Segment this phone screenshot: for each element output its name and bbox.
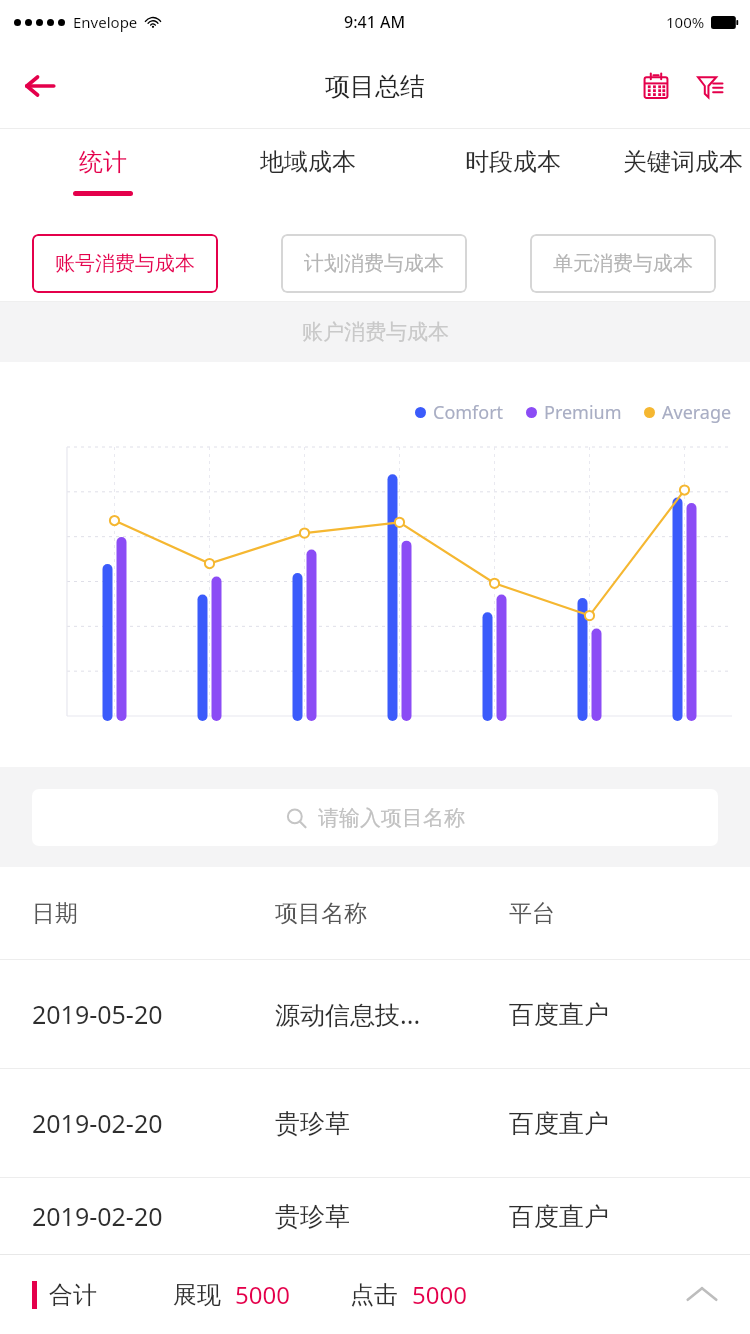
staticText: Envelope: [73, 12, 138, 32]
staticText: 计划消费与成本: [304, 251, 444, 276]
staticText: 贵珍草: [275, 1108, 350, 1139]
staticText: 2019-05-20: [32, 997, 163, 1031]
button[interactable]: Back: [14, 60, 66, 112]
button[interactable]: 统计: [0, 129, 205, 225]
staticText: 百度直户: [509, 999, 609, 1030]
staticText: 贵珍草: [275, 1201, 350, 1232]
button[interactable]: 单元消费与成本: [530, 234, 716, 293]
button[interactable]: 2019-05-20: [0, 960, 750, 1068]
staticText: 统计: [79, 147, 127, 177]
button[interactable]: Calendar: [632, 62, 680, 110]
staticText: Comfort: [433, 400, 504, 425]
staticText: Average: [662, 400, 732, 425]
staticText: 项目名称: [275, 899, 367, 928]
staticText: 项目总结: [325, 71, 425, 102]
button[interactable]: 2019-02-20: [0, 1069, 750, 1177]
button[interactable]: 请输入项目名称: [32, 789, 718, 846]
staticText: 2019-02-20: [32, 1199, 163, 1233]
button[interactable]: 地域成本: [205, 129, 410, 225]
button[interactable]: Collapse: [670, 1263, 734, 1327]
staticText: 时段成本: [465, 147, 561, 177]
staticText: 2019-02-20: [32, 1106, 163, 1140]
staticText: 账户消费与成本: [302, 319, 449, 345]
button[interactable]: 2019-02-20: [0, 1178, 750, 1254]
button[interactable]: 时段成本: [410, 129, 615, 225]
staticText: 100%: [666, 12, 705, 32]
staticText: 5000: [235, 1278, 290, 1311]
staticText: 地域成本: [260, 147, 356, 177]
staticText: 9:41 AM: [344, 11, 406, 33]
staticText: 关键词成本: [623, 147, 743, 177]
staticText: 账号消费与成本: [55, 251, 195, 276]
button[interactable]: 账号消费与成本: [32, 234, 218, 293]
staticText: 请输入项目名称: [318, 805, 465, 831]
staticText: 百度直户: [509, 1108, 609, 1139]
staticText: Premium: [544, 400, 622, 425]
button[interactable]: Filter: [686, 62, 734, 110]
button[interactable]: 计划消费与成本: [281, 234, 467, 293]
staticText: 展现: [173, 1280, 221, 1310]
staticText: 日期: [32, 899, 78, 928]
staticText: 5000: [412, 1278, 467, 1311]
staticText: 平台: [509, 899, 555, 928]
button[interactable]: 关键词成本: [615, 129, 750, 225]
staticText: 单元消费与成本: [553, 251, 693, 276]
staticText: 合计: [49, 1280, 97, 1310]
staticText: 百度直户: [509, 1201, 609, 1232]
staticText: 源动信息技...: [275, 997, 421, 1031]
staticText: 点击: [350, 1280, 398, 1310]
